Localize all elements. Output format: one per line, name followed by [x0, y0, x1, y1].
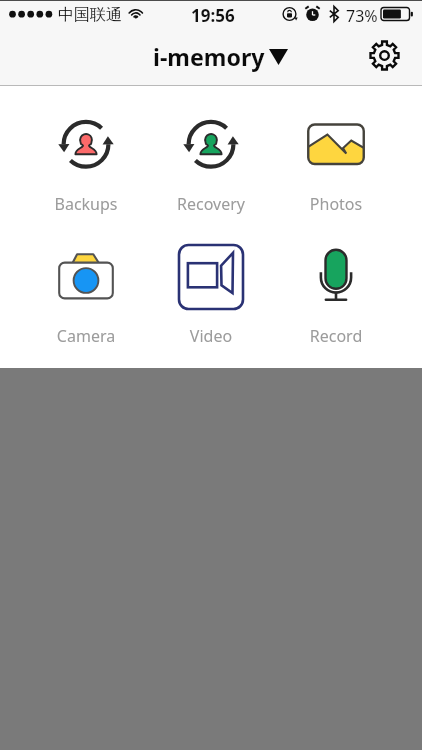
button[interactable]: Photos [277, 108, 395, 200]
button[interactable]: Backups [27, 108, 145, 200]
staticText: i-memory [153, 41, 265, 73]
button[interactable]: Record [277, 241, 395, 333]
button[interactable]: i-memory [150, 38, 292, 72]
staticText: 73% [346, 5, 378, 27]
staticText: 19:56 [191, 4, 235, 27]
staticText: Video [152, 325, 270, 347]
button[interactable]: Video [152, 241, 270, 333]
button[interactable]: Settings [365, 36, 404, 75]
staticText: Record [277, 325, 395, 347]
button[interactable]: Camera [27, 241, 145, 333]
button[interactable]: Recovery [152, 108, 270, 200]
staticText: Photos [277, 193, 395, 215]
staticText: Recovery [152, 193, 270, 215]
staticText: Backups [27, 193, 145, 215]
staticText: Camera [27, 325, 145, 347]
staticText: 中国联通 [58, 5, 122, 25]
